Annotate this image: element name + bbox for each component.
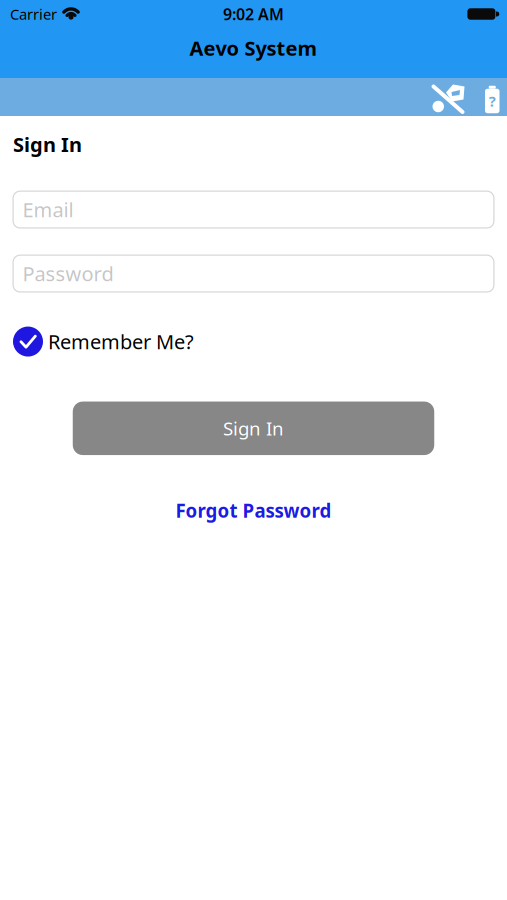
button[interactable]: Forgot Password (175, 498, 331, 523)
textField[interactable] (22, 260, 494, 287)
button[interactable]: Sign In (73, 402, 434, 455)
staticText: Password (22, 260, 113, 287)
textField[interactable] (22, 196, 494, 223)
staticText: Remember Me? (48, 328, 194, 355)
button[interactable]: ? (485, 83, 499, 111)
staticText: Sign In (13, 131, 82, 158)
staticText: Sign In (223, 416, 284, 441)
button[interactable]: Remember Me? (0, 327, 194, 357)
staticText: Forgot Password (175, 498, 331, 523)
staticText: Email (22, 196, 73, 223)
button[interactable] (430, 82, 465, 112)
staticText: Carrier (10, 4, 57, 24)
staticText: Aevo System (189, 35, 317, 61)
staticText: 9:02 AM (223, 3, 284, 25)
staticText: ? (489, 91, 496, 111)
